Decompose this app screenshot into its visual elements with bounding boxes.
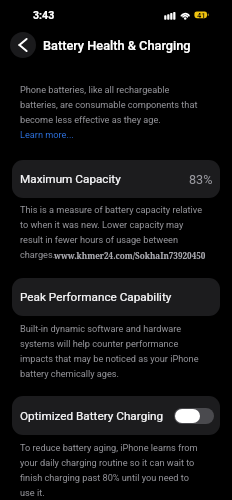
other: Battery 41 percent, low power mode (194, 11, 210, 20)
staticText: Optimized Battery Charging (20, 409, 164, 423)
other: Wi-Fi (180, 10, 191, 21)
staticText: 83% (189, 172, 213, 187)
staticText: www.khmer24.com/SokhaIn73920450 (54, 250, 206, 261)
button[interactable]: Maximum Capacity (12, 160, 220, 198)
button[interactable]: Learn more... (20, 126, 74, 141)
button[interactable]: Optimized Battery Charging (12, 396, 220, 435)
staticText: Peak Performance Capability (20, 290, 172, 304)
staticText: 41 (197, 11, 206, 20)
button[interactable]: Back (10, 32, 36, 58)
staticText: Phone batteries, like all rechargeable b… (20, 81, 204, 126)
button[interactable]: Peak Performance Capability (12, 278, 220, 316)
staticText: Maximum Capacity (20, 172, 121, 186)
staticText: This is a measure of battery capacity re… (20, 201, 204, 261)
other: Cellular signal (164, 10, 177, 21)
staticText: Battery Health & Charging (43, 38, 191, 53)
staticText: To reduce battery aging, iPhone learns f… (20, 439, 204, 499)
button[interactable]: Optimized Battery Charging (174, 408, 214, 424)
staticText: 3:43 (33, 9, 55, 21)
staticText: Built-in dynamic software and hardware s… (20, 320, 204, 380)
